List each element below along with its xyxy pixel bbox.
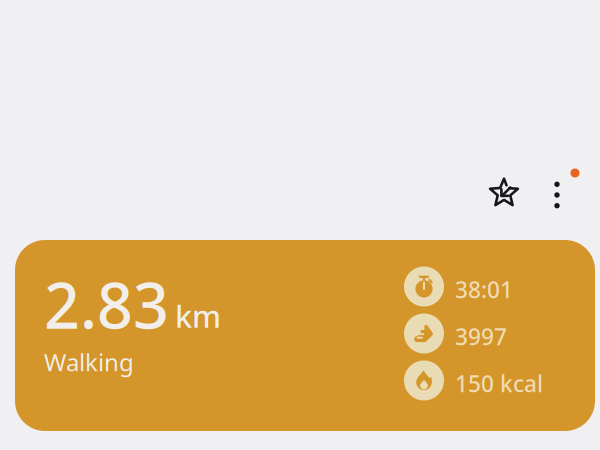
button[interactable]: 2.83: [15, 240, 595, 431]
staticText: 2.83: [44, 263, 169, 346]
staticText: Walking: [44, 346, 134, 378]
button[interactable]: Save to favourites: [485, 173, 529, 217]
button[interactable]: More options: [544, 173, 570, 217]
staticText: 150: [455, 368, 494, 398]
staticText: km: [175, 295, 221, 336]
staticText: 38:01: [455, 274, 513, 304]
staticText: kcal: [500, 368, 543, 398]
staticText: 3997: [455, 321, 507, 351]
